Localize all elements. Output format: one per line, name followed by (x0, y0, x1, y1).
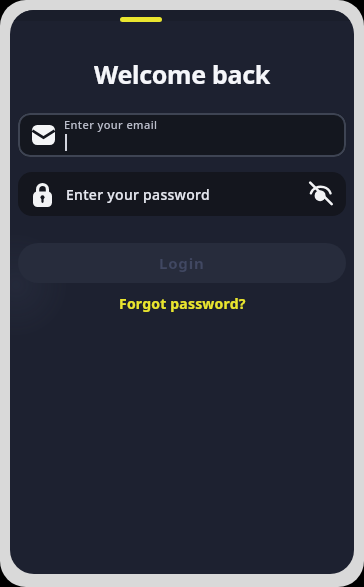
button[interactable] (308, 181, 334, 207)
button[interactable]: Enter your email (18, 113, 346, 157)
staticText: Forgot password? (119, 294, 246, 313)
staticText: Enter your password (66, 185, 210, 204)
staticText: Login (159, 253, 205, 273)
button[interactable]: Login (18, 243, 346, 283)
button[interactable]: Forgot password? (119, 294, 246, 313)
staticText: Welcome back (10, 57, 354, 91)
staticText: Enter your email (64, 117, 158, 132)
button[interactable]: Enter your password (18, 172, 346, 216)
